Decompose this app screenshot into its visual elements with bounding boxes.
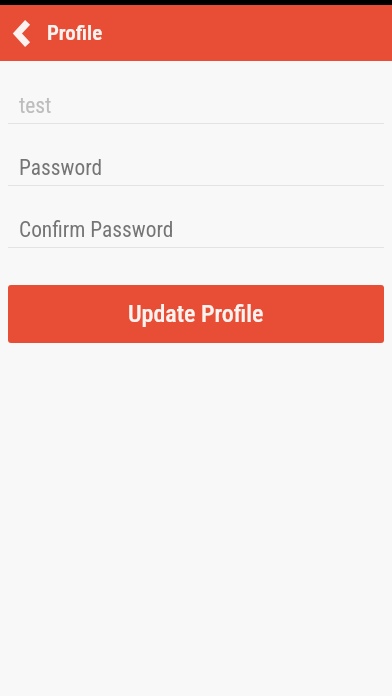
button[interactable]: Update Profile [8, 285, 384, 343]
button[interactable]: test [8, 92, 384, 124]
staticText: Update Profile [128, 300, 264, 328]
staticText: Confirm Password [19, 217, 174, 242]
staticText: Password [19, 155, 103, 180]
staticText: Profile [47, 21, 103, 46]
button[interactable]: Navigate back [0, 5, 45, 61]
staticText: test [19, 93, 52, 118]
button[interactable]: Password [8, 154, 384, 186]
button[interactable]: Confirm Password [8, 216, 384, 248]
